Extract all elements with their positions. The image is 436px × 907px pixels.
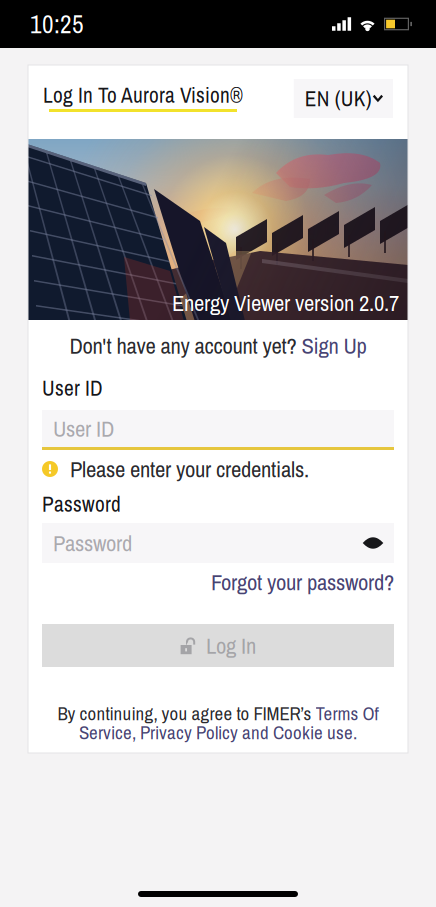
staticText: Terms Of [315, 701, 378, 726]
staticText: Password [53, 528, 132, 558]
staticText: By continuing, you agree to FIMER’s [57, 701, 315, 726]
button[interactable]: Show password [354, 525, 386, 561]
button[interactable]: Service, Privacy Policy and Cookie use. [79, 720, 357, 745]
button[interactable]: Forgot your password? [211, 567, 394, 597]
staticText: 10:25 [30, 7, 84, 41]
staticText: Please enter your credentials. [70, 454, 309, 484]
button[interactable]: EN (UK) [294, 79, 393, 118]
button[interactable]: Terms Of [315, 701, 378, 726]
staticText: Log In To Aurora Vision® [43, 81, 243, 109]
staticText: Service, Privacy Policy and Cookie use. [79, 720, 357, 745]
staticText: Forgot your password? [211, 567, 394, 597]
staticText: User ID [53, 413, 114, 444]
button[interactable]: Sign Up [301, 330, 366, 361]
staticText: EN (UK) [305, 84, 372, 113]
staticText: Energy Viewer version 2.0.7 [172, 287, 399, 318]
staticText: User ID [42, 374, 103, 402]
staticText: Sign Up [301, 330, 366, 361]
staticText: Don't have any account yet? [69, 330, 301, 361]
button[interactable]: Log In [42, 624, 394, 667]
staticText: Log In [206, 630, 256, 661]
staticText: Password [42, 490, 121, 518]
